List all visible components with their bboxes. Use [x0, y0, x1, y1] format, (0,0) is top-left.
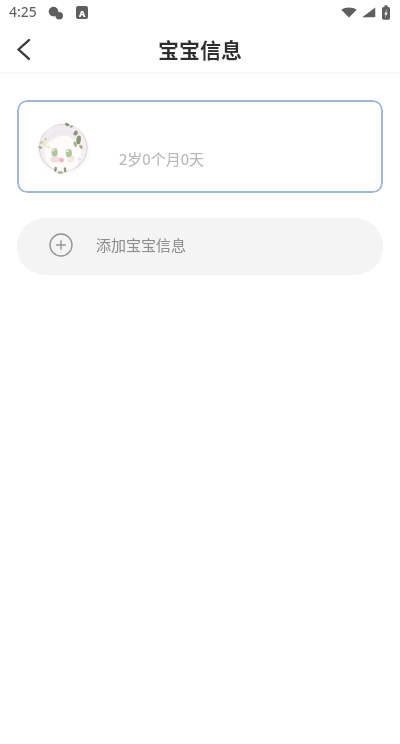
- staticText: A: [79, 7, 86, 19]
- staticText: 添加宝宝信息: [96, 234, 187, 256]
- staticText: 2岁0个月0天: [119, 148, 204, 170]
- button[interactable]: Back: [0, 26, 46, 72]
- button[interactable]: 2岁0个月0天: [17, 100, 383, 193]
- staticText: 宝宝信息: [158, 34, 242, 64]
- button[interactable]: 添加宝宝信息: [17, 218, 383, 275]
- staticText: 4:25: [9, 2, 37, 21]
